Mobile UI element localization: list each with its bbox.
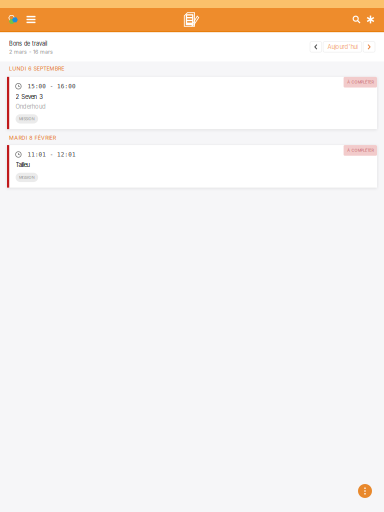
- staticText: 2 Seven 3: [16, 93, 43, 100]
- staticText: Tailleu: [16, 161, 30, 169]
- staticText: 15:00 - 16:00: [27, 83, 76, 90]
- button[interactable]: Shortcuts: [363, 8, 377, 31]
- staticText: 2 mars - 16 mars: [9, 49, 53, 55]
- button[interactable]: 11:01 - 12:01: [7, 145, 377, 188]
- button[interactable]: Aujourd'hui: [323, 42, 362, 52]
- button[interactable]: Search: [349, 8, 363, 31]
- staticText: MISSION: [19, 116, 35, 121]
- button[interactable]: 15:00 - 16:00: [7, 77, 377, 129]
- button[interactable]: Home: [4, 8, 21, 31]
- staticText: Aujourd'hui: [327, 43, 357, 50]
- staticText: Bons de travail: [9, 40, 47, 47]
- staticText: LUNDI 6 SEPTEMBRE: [9, 65, 64, 72]
- button[interactable]: Menu: [21, 8, 40, 31]
- staticText: Onderhoud: [16, 103, 46, 110]
- staticText: À COMPLÉTER: [347, 80, 373, 85]
- staticText: MARDI 8 FÉVRIER: [9, 135, 56, 141]
- button[interactable]: [363, 42, 375, 52]
- staticText: 11:01 - 12:01: [27, 151, 76, 158]
- staticText: MISSION: [19, 175, 35, 180]
- staticText: À COMPLÉTER: [347, 148, 373, 153]
- button[interactable]: [310, 42, 322, 52]
- button[interactable]: Work orders: [183, 12, 200, 27]
- button[interactable]: More options: [358, 484, 372, 498]
